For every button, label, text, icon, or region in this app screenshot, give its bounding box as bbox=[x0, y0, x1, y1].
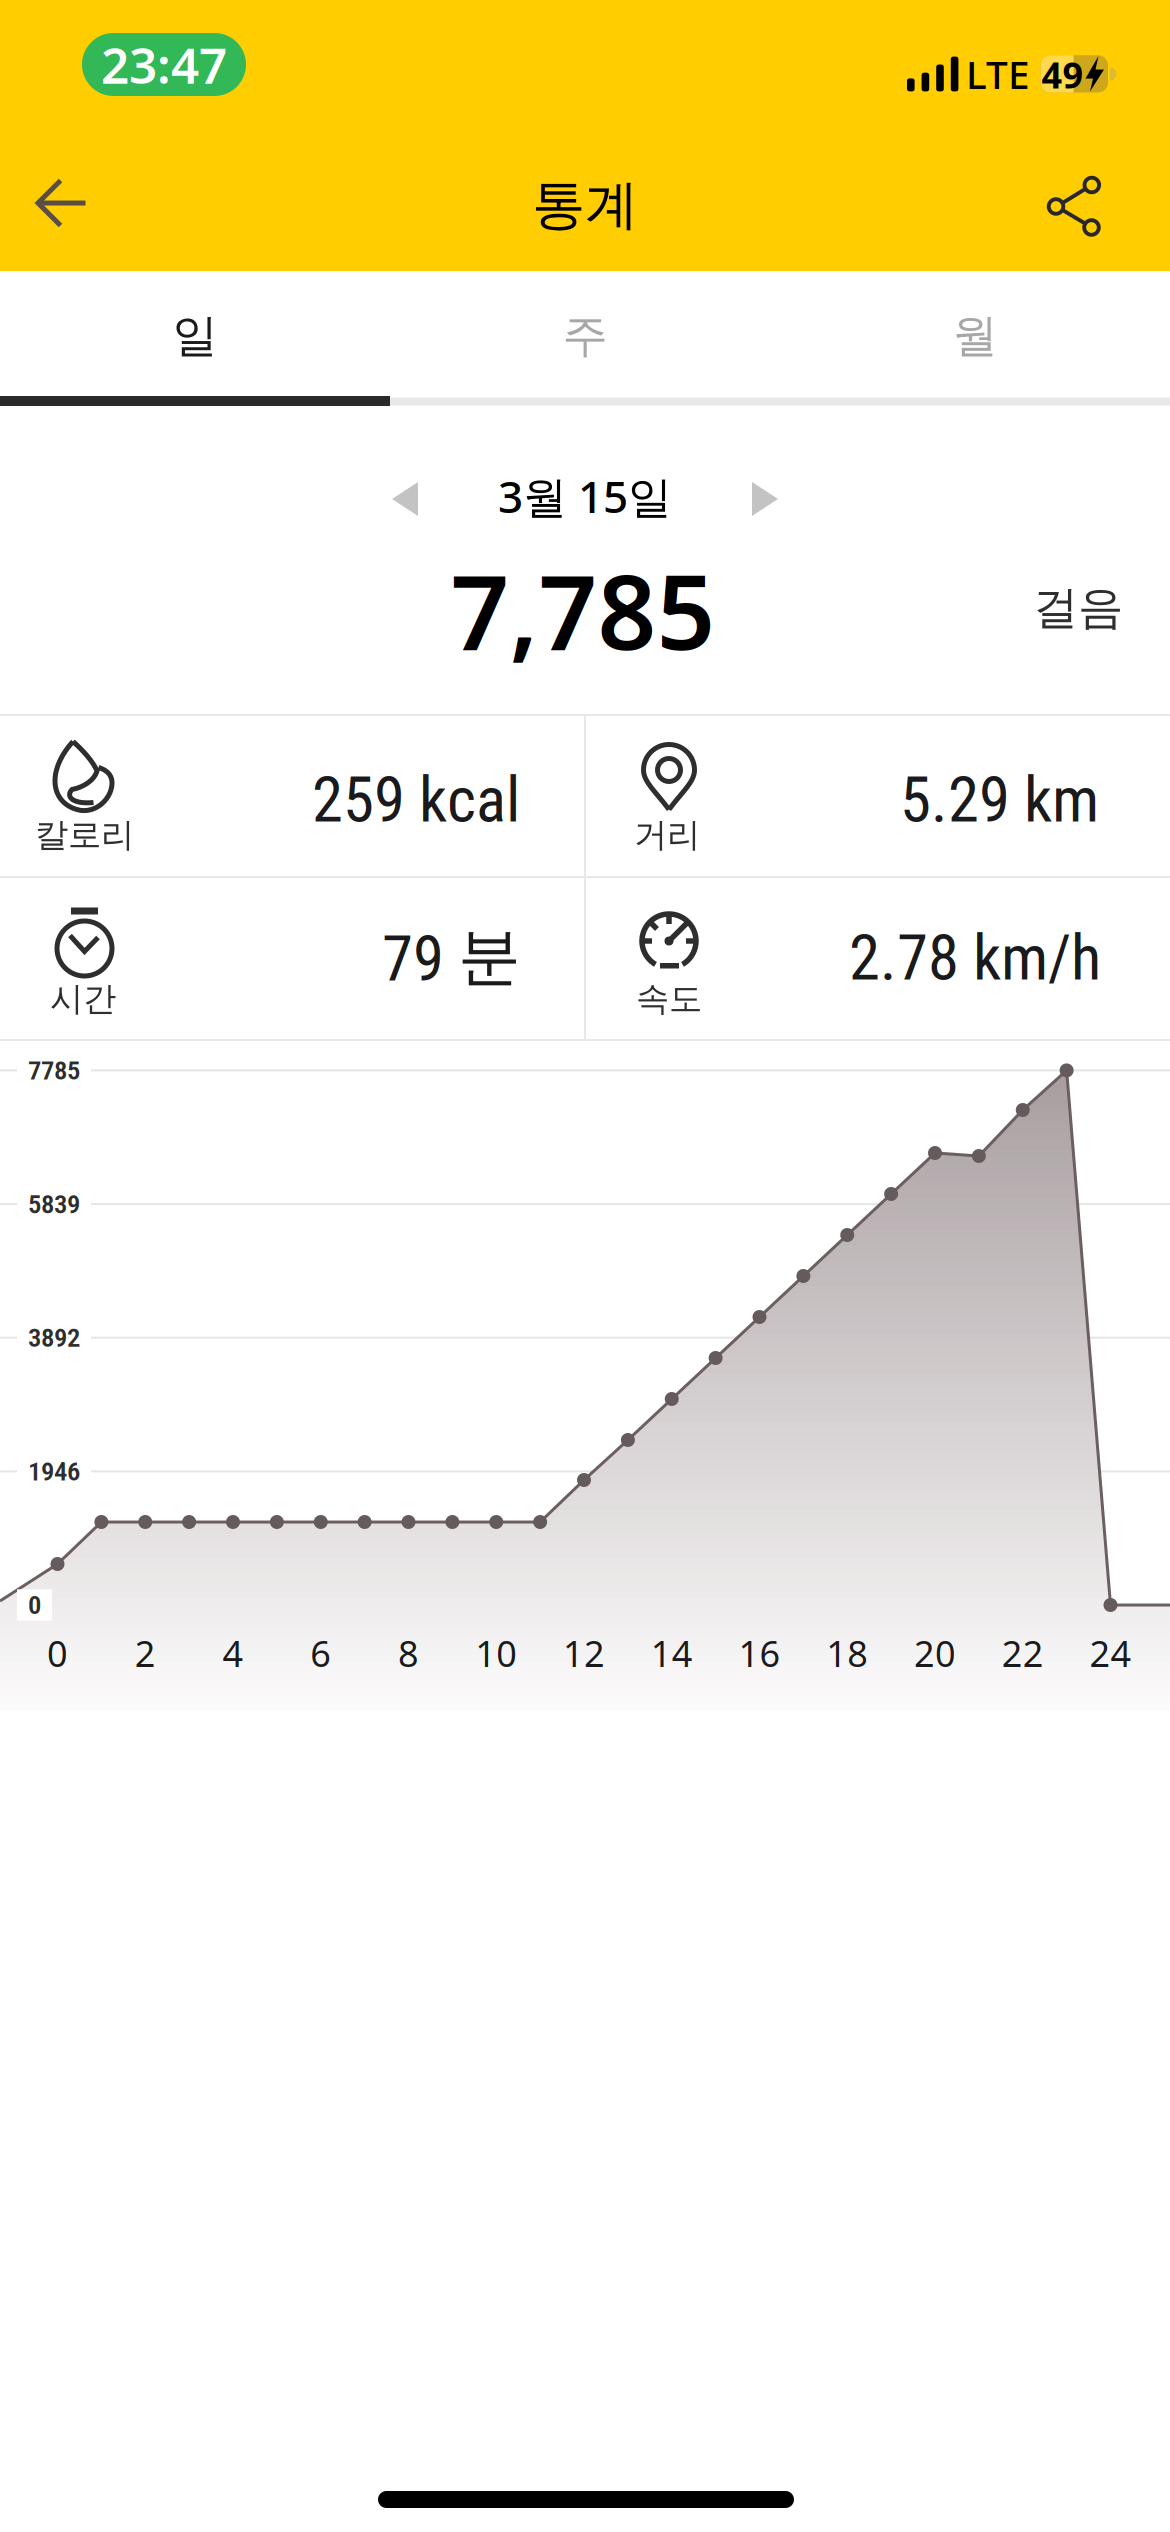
staticText: 16 bbox=[738, 1629, 780, 1677]
staticText: 8 bbox=[398, 1629, 419, 1677]
staticText: 5839 bbox=[28, 1188, 80, 1220]
button[interactable]: Share bbox=[1029, 161, 1119, 251]
staticText: 20 bbox=[914, 1629, 956, 1677]
staticText: 0 bbox=[28, 1589, 41, 1621]
staticText: 49 bbox=[1041, 51, 1083, 98]
staticText: 3892 bbox=[28, 1322, 80, 1353]
staticText: 월 bbox=[952, 308, 997, 364]
staticText: 거리 bbox=[634, 814, 700, 855]
staticText: 6 bbox=[310, 1629, 331, 1677]
staticText: 24 bbox=[1089, 1629, 1131, 1677]
button[interactable]: Previous day bbox=[370, 464, 440, 534]
staticText: 7,785 bbox=[450, 542, 715, 678]
staticText: 4 bbox=[222, 1629, 243, 1677]
staticText: 7785 bbox=[28, 1055, 80, 1086]
staticText: 시간 bbox=[50, 978, 116, 1019]
staticText: 걸음 bbox=[1033, 580, 1123, 636]
staticText: 23:47 bbox=[101, 32, 227, 97]
staticText: 3월 15일 bbox=[498, 467, 672, 525]
button[interactable]: 일 bbox=[0, 273, 390, 398]
staticText: 0 bbox=[47, 1629, 68, 1677]
staticText: 2 bbox=[135, 1629, 156, 1677]
staticText: 일 bbox=[172, 308, 217, 364]
staticText: 12 bbox=[563, 1629, 605, 1677]
staticText: 주 bbox=[562, 308, 607, 364]
staticText: 10 bbox=[475, 1629, 517, 1677]
staticText: 22 bbox=[1002, 1629, 1044, 1677]
staticText: 14 bbox=[651, 1629, 693, 1677]
staticText: 18 bbox=[826, 1629, 868, 1677]
staticText: 79 분 bbox=[382, 917, 521, 996]
staticText: 칼로리 bbox=[35, 814, 134, 855]
staticText: 5.29 km bbox=[900, 763, 1099, 837]
staticText: 통계 bbox=[532, 172, 638, 238]
button[interactable]: Back bbox=[17, 158, 107, 248]
staticText: 속도 bbox=[636, 978, 702, 1019]
staticText: 259 kcal bbox=[312, 763, 520, 837]
staticText: 2.78 km/h bbox=[849, 921, 1101, 995]
button[interactable]: 주 bbox=[390, 273, 780, 398]
button[interactable]: Next day bbox=[730, 464, 800, 534]
button[interactable]: 월 bbox=[780, 273, 1170, 398]
staticText: 1946 bbox=[28, 1456, 80, 1487]
staticText: LTE bbox=[966, 48, 1030, 100]
